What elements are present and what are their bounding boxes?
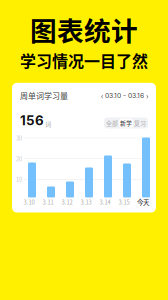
staticText: 30 — [16, 134, 22, 142]
staticText: 复习 — [134, 119, 146, 127]
staticText: 词 — [44, 120, 51, 128]
button[interactable]: 新学 — [119, 118, 133, 127]
staticText: 10 — [16, 175, 22, 183]
staticText: 3.10 — [23, 198, 34, 206]
staticText: 新学 — [120, 119, 132, 127]
staticText: 3.12 — [61, 198, 72, 206]
staticText: 20 — [16, 154, 22, 163]
staticText: 图表统计 — [30, 10, 138, 49]
staticText: 学习情况一目了然 — [20, 49, 148, 72]
staticText: 3.11 — [42, 198, 53, 206]
staticText: › — [146, 90, 148, 101]
staticText: 3.14 — [99, 198, 110, 206]
staticText: ‹ — [101, 90, 103, 101]
staticText: 3.15 — [118, 198, 129, 206]
button[interactable]: 全部 — [105, 118, 119, 127]
button[interactable]: 复习 — [133, 118, 147, 127]
staticText: 3.13 — [80, 198, 91, 206]
button[interactable]: ‹ — [101, 90, 148, 101]
staticText: 周单词学习量 — [20, 90, 68, 101]
staticText: 今天 — [137, 197, 149, 207]
staticText: 03.10 - 03.16 — [105, 91, 144, 100]
staticText: 全部 — [106, 119, 118, 127]
staticText: 156 — [20, 112, 44, 128]
